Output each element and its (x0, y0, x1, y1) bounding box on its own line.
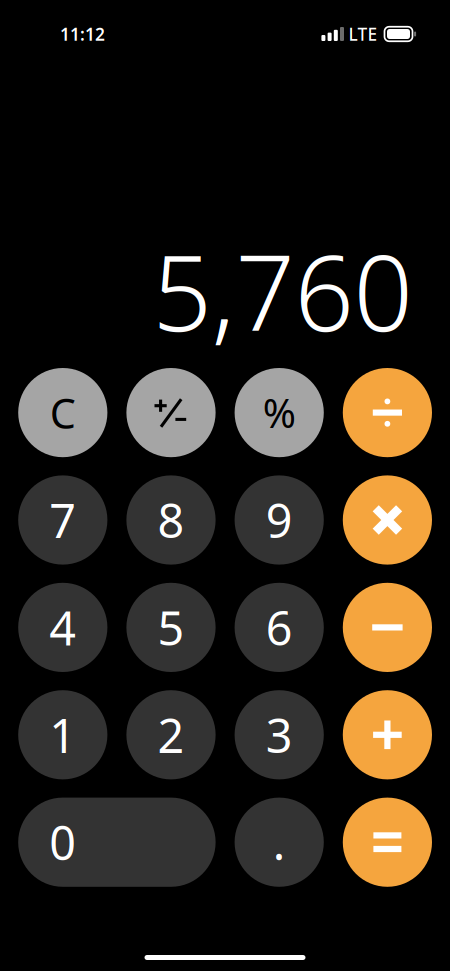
staticText: 1 (49, 704, 76, 766)
staticText: 8 (157, 489, 184, 551)
button[interactable]: 6 (235, 583, 324, 672)
button[interactable]: 0 (18, 798, 216, 887)
staticText: LTE (348, 22, 377, 45)
button[interactable]: Divide (343, 368, 432, 457)
staticText: 9 (266, 489, 293, 551)
button[interactable]: Minus (343, 583, 432, 672)
staticText: 5 (157, 596, 184, 658)
button[interactable]: 9 (235, 475, 324, 565)
staticText: 4 (49, 596, 76, 658)
button[interactable]: . (235, 798, 324, 887)
staticText: . (273, 811, 286, 873)
staticText: 7 (49, 489, 76, 551)
staticText: 2 (157, 704, 184, 766)
button[interactable]: 8 (126, 475, 216, 565)
button[interactable]: 3 (235, 690, 324, 779)
button[interactable]: Equals (343, 798, 432, 887)
button[interactable]: Multiply (343, 475, 432, 565)
button[interactable]: C (18, 368, 107, 457)
button[interactable]: 4 (18, 583, 107, 672)
staticText: 3 (266, 704, 293, 766)
staticText: C (50, 385, 76, 440)
button[interactable]: 1 (18, 690, 107, 779)
staticText: % (263, 386, 296, 439)
button[interactable]: Plus minus (126, 368, 216, 457)
button[interactable]: 7 (18, 475, 107, 565)
button[interactable]: 2 (126, 690, 216, 779)
button[interactable]: Plus (343, 690, 432, 779)
button[interactable]: 5 (126, 583, 216, 672)
staticText: 5,760 (152, 222, 412, 360)
staticText: 6 (266, 596, 293, 658)
button[interactable]: % (235, 368, 324, 457)
staticText: 11:12 (60, 22, 105, 45)
staticText: 0 (49, 811, 76, 873)
